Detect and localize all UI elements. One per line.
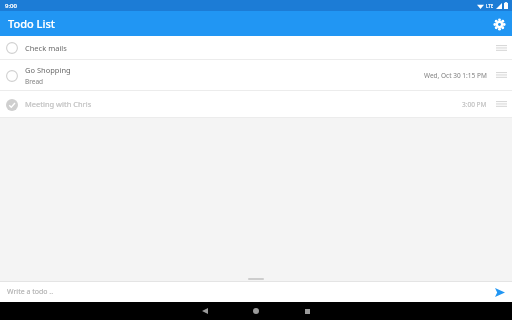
button[interactable]: Recent apps (295, 302, 319, 320)
button[interactable]: Back (193, 302, 217, 320)
button[interactable]: Check mails (0, 36, 512, 59)
staticText: Wed, Oct 30 1:15 PM (424, 71, 487, 80)
staticText: LTE (486, 3, 494, 9)
button[interactable]: Reorder (494, 97, 508, 111)
button[interactable]: Reorder (494, 41, 508, 55)
button[interactable]: Reorder (494, 68, 508, 82)
button[interactable]: Meeting with Chris (0, 91, 512, 117)
button[interactable]: Send (492, 284, 508, 300)
staticText: Bread (25, 77, 44, 86)
staticText: 3:00 PM (462, 100, 487, 109)
staticText: Todo List (8, 16, 55, 31)
button[interactable]: Go Shopping (0, 60, 512, 90)
staticText: Meeting with Chris (25, 99, 92, 109)
staticText: Write a todo .. (7, 287, 54, 297)
staticText: Check mails (25, 43, 67, 53)
staticText: 9:00 (5, 2, 17, 10)
button[interactable]: Settings (489, 14, 509, 34)
button[interactable]: Write a todo .. (7, 287, 492, 297)
staticText: Go Shopping (25, 65, 71, 75)
button[interactable]: Home (244, 302, 268, 320)
